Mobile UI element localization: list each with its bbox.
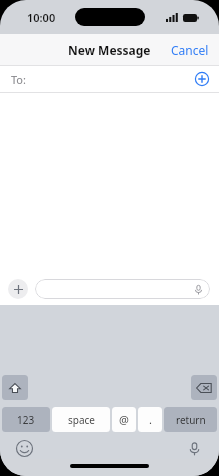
staticText: New Message (68, 42, 151, 58)
staticText: space (68, 413, 95, 427)
staticText: return (176, 413, 206, 427)
button[interactable]: 123 (2, 407, 50, 432)
button[interactable]: space (52, 407, 110, 432)
button[interactable]: Add contact (195, 72, 209, 86)
button[interactable]: Dictation (185, 439, 204, 458)
button[interactable]: @ (112, 407, 136, 432)
button[interactable]: Shift (2, 375, 28, 400)
button[interactable]: Cancel (161, 37, 219, 63)
button[interactable] (35, 279, 210, 299)
button[interactable]: . (138, 407, 162, 432)
button[interactable]: return (164, 407, 217, 432)
button[interactable]: Backspace (191, 375, 217, 400)
staticText: To: (11, 72, 26, 87)
button[interactable]: Emoji (15, 439, 34, 458)
staticText: Cancel (171, 42, 209, 58)
staticText: 10:00 (27, 10, 56, 25)
staticText: 123 (17, 413, 35, 427)
staticText: . (149, 412, 152, 427)
button[interactable]: Add attachment (8, 279, 28, 299)
button[interactable]: To: (0, 66, 219, 92)
staticText: @ (119, 412, 129, 427)
